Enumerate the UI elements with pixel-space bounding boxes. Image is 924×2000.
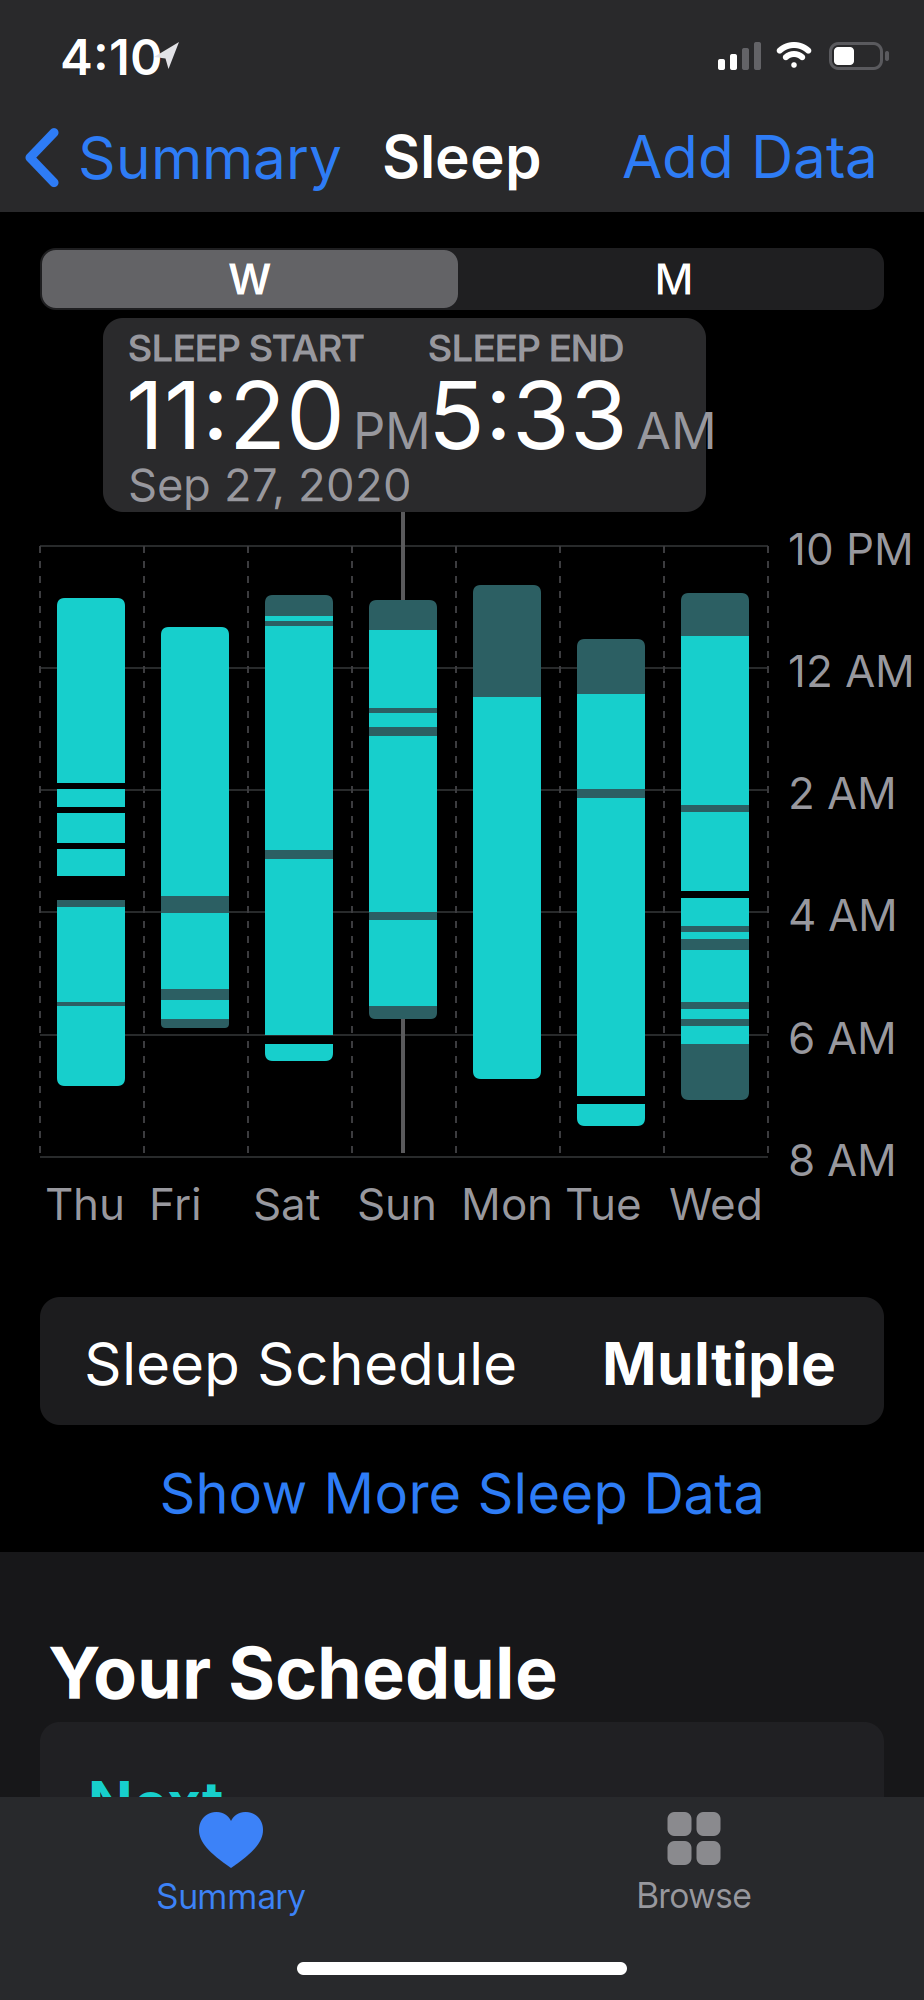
button[interactable]: Browse	[544, 1812, 844, 1916]
staticText: 11:20	[126, 360, 345, 470]
staticText: Summary	[156, 1876, 305, 1917]
staticText: 2 AM	[788, 767, 897, 819]
staticText: Mon	[461, 1178, 553, 1230]
button[interactable]: Summary	[26, 123, 342, 192]
staticText: AM	[636, 401, 717, 460]
staticText: SLEEP START	[128, 326, 365, 370]
staticText: 5:33	[428, 360, 628, 470]
staticText: Your Schedule	[48, 1630, 558, 1715]
staticText: 6 AM	[788, 1012, 897, 1064]
staticText: Show More Sleep Data	[159, 1460, 764, 1526]
staticText: Fri	[149, 1178, 202, 1230]
staticText: Wed	[669, 1178, 763, 1230]
staticText: 12 AM	[788, 645, 915, 697]
staticText: 4:10	[60, 28, 163, 86]
staticText: Multiple	[602, 1329, 836, 1398]
staticText: PM	[353, 401, 431, 460]
staticText: Sat	[253, 1178, 320, 1230]
button[interactable]: Add Data	[622, 122, 878, 191]
staticText: Sep 27, 2020	[128, 458, 412, 511]
button[interactable]: Summary	[81, 1812, 381, 1917]
button[interactable]: W	[42, 250, 458, 308]
staticText: 10 PM	[788, 523, 914, 575]
button[interactable]: Show More Sleep Data	[159, 1460, 764, 1526]
staticText: Sun	[357, 1178, 437, 1230]
staticText: Tue	[565, 1178, 642, 1230]
button[interactable]: Sleep Schedule	[40, 1297, 884, 1425]
staticText: Next	[88, 1768, 223, 1837]
button[interactable]: M	[466, 250, 882, 308]
staticText: Add Data	[622, 122, 878, 191]
staticText: Sleep	[382, 122, 542, 191]
staticText: SLEEP END	[428, 326, 624, 370]
staticText: Browse	[636, 1875, 751, 1916]
button[interactable]: Next	[40, 1722, 884, 1842]
staticText: Summary	[78, 123, 342, 192]
staticText: Thu	[45, 1178, 125, 1230]
staticText: Sleep Schedule	[84, 1329, 517, 1398]
staticText: 8 AM	[788, 1134, 897, 1186]
staticText: W	[228, 254, 272, 304]
staticText: M	[654, 254, 693, 304]
staticText: 4 AM	[788, 889, 898, 941]
